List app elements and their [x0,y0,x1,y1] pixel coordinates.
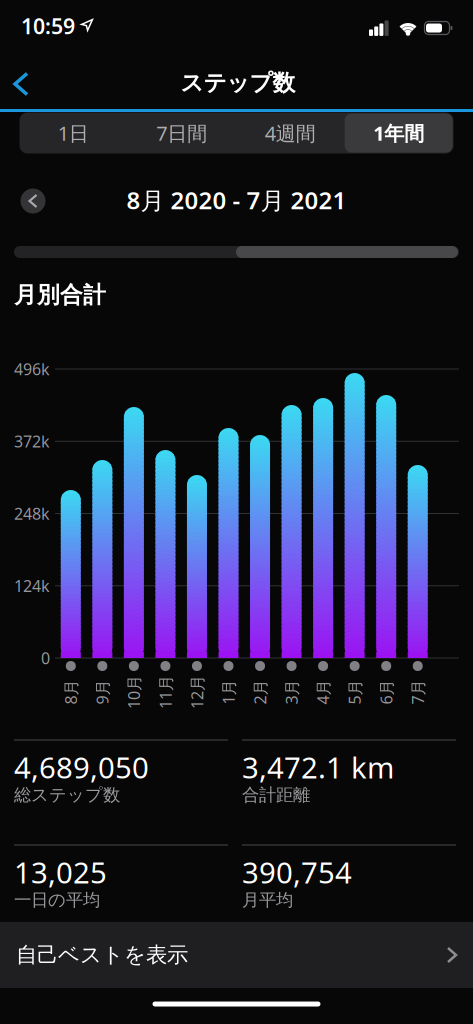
staticText: 13,025 [14,852,107,891]
button[interactable]: 1年間 [345,113,453,152]
staticText: 2月 [247,681,272,703]
staticText: 4月 [311,681,336,703]
staticText: 8月 [58,681,83,703]
staticText: 124k [14,575,50,596]
staticText: 7月 [405,681,430,703]
staticText: 10:59 [21,12,75,40]
staticText: ステップ数 [180,69,295,97]
staticText: 1月 [216,681,241,703]
staticText: 496k [14,358,50,380]
staticText: 自己ベストを表示 [16,942,188,968]
staticText: 10月 [117,681,151,703]
staticText: 372k [14,431,50,452]
staticText: 3,472.1 km [242,747,394,786]
staticText: 390,754 [242,852,352,891]
staticText: 月平均 [242,889,293,911]
button[interactable]: 1日 [19,112,127,153]
staticText: 6月 [374,681,399,703]
staticText: 1日 [58,120,89,146]
staticText: 一日の平均 [14,889,100,911]
staticText: 8月 2020 - 7月 2021 [126,184,346,216]
staticText: 12月 [180,681,214,703]
staticText: 9月 [90,681,115,703]
staticText: 248k [14,503,50,524]
button[interactable]: 4週間 [236,112,344,153]
button[interactable]: 自己ベストを表示 [0,922,473,988]
staticText: 3月 [279,681,304,703]
staticText: 5月 [342,681,367,703]
staticText: 1年間 [373,120,424,146]
staticText: 4週間 [265,120,316,146]
staticText: 合計距離 [242,784,310,806]
staticText: 月別合計 [14,281,106,309]
staticText: 0 [41,647,50,669]
staticText: 総ステップ数 [14,784,120,806]
button[interactable]: 前の期間 [20,188,45,213]
staticText: 4,689,050 [14,747,149,786]
button[interactable]: 戻る [5,65,37,102]
staticText: 7日間 [156,120,207,146]
staticText: 11月 [148,681,182,703]
button[interactable]: 7日間 [128,112,236,153]
